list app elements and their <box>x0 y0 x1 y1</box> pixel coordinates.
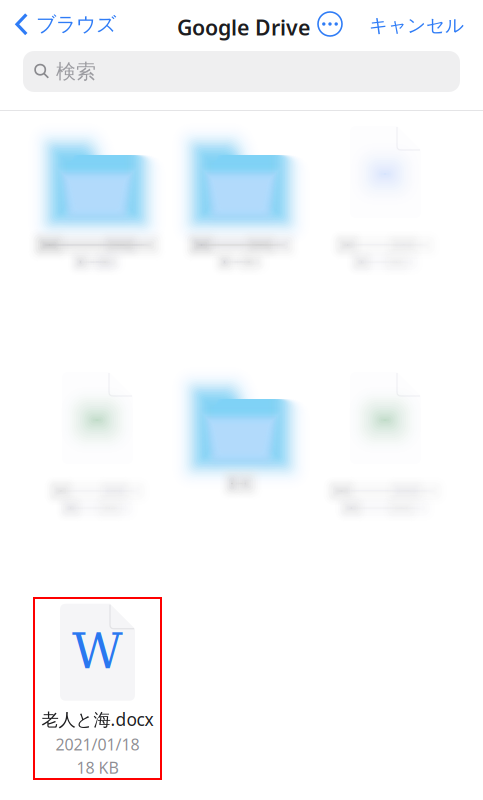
staticText: 老人と海.docx <box>41 708 153 731</box>
button[interactable]: キャンセル <box>359 7 474 44</box>
staticText: W <box>72 622 123 680</box>
button[interactable]: More options <box>310 4 350 44</box>
staticText: キャンセル <box>369 14 464 37</box>
staticText: 18 KB <box>76 757 118 778</box>
staticText: 2021/01/18 <box>55 734 139 755</box>
button[interactable]: ブラウズ <box>3 5 128 44</box>
button[interactable]: 検索 <box>23 51 460 92</box>
staticText: Google Drive <box>177 13 310 41</box>
staticText: 検索 <box>56 59 96 84</box>
button[interactable]: W <box>34 598 161 779</box>
staticText: ブラウズ <box>36 12 116 37</box>
